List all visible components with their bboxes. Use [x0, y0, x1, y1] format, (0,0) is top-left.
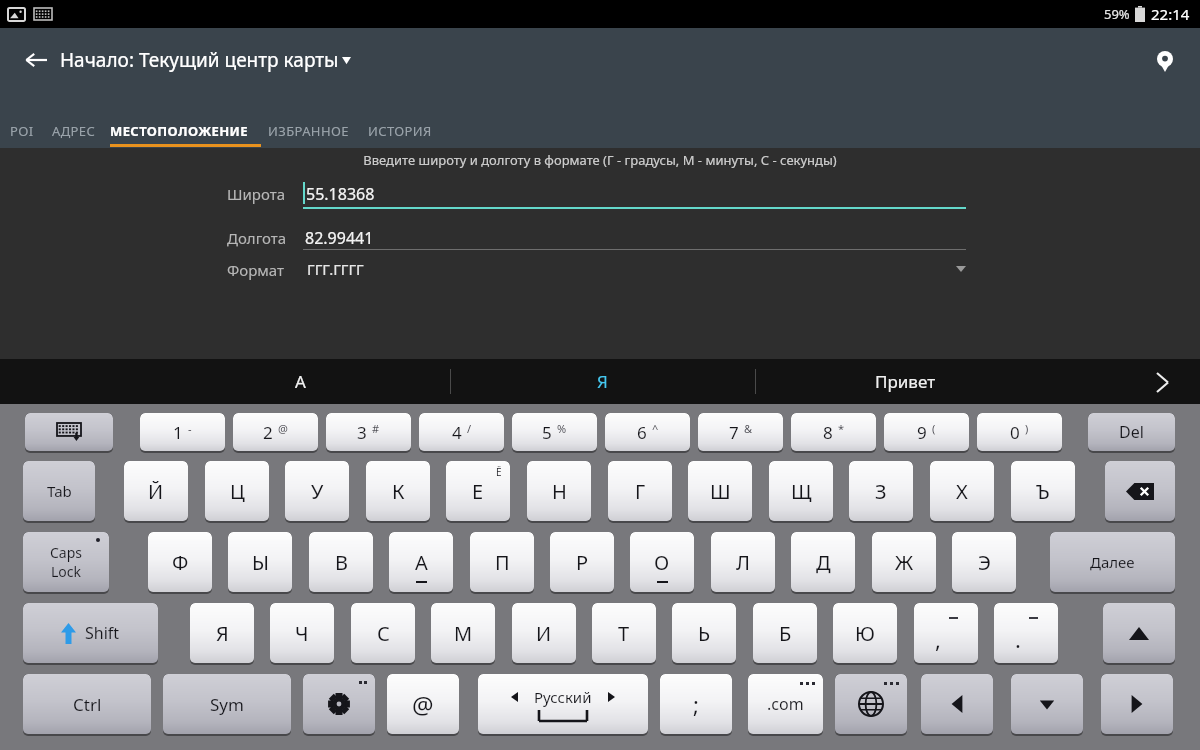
button[interactable]: 9	[884, 413, 969, 451]
button[interactable]: Left	[921, 674, 993, 734]
button[interactable]: С	[351, 603, 415, 663]
staticText: Caps	[50, 543, 83, 562]
button[interactable]: Ж	[872, 532, 936, 592]
button[interactable]: .com	[748, 674, 823, 734]
staticText: К	[392, 478, 405, 505]
staticText: Б	[779, 620, 792, 647]
button[interactable]: Up	[1103, 603, 1175, 663]
staticText: Н	[552, 478, 567, 505]
button[interactable]: ИЗБРАННОЕ	[268, 113, 349, 148]
button[interactable]: Д	[791, 532, 855, 592]
staticText: Привет	[875, 370, 936, 393]
button[interactable]: О	[630, 532, 694, 592]
staticText: ИСТОРИЯ	[368, 122, 432, 140]
button[interactable]: Ф	[148, 532, 212, 592]
staticText: @	[278, 421, 288, 436]
staticText: ^	[652, 421, 659, 436]
button[interactable]: Shift	[23, 603, 158, 663]
staticText: Ъ	[1036, 478, 1050, 505]
staticText: Sym	[210, 693, 244, 716]
button[interactable]: .	[994, 603, 1058, 663]
button[interactable]: Н	[527, 461, 591, 521]
button[interactable]: Й	[124, 461, 188, 521]
button[interactable]: Э	[952, 532, 1016, 592]
button[interactable]: 2	[233, 413, 318, 451]
button[interactable]: П	[470, 532, 534, 592]
button[interactable]: Language	[835, 674, 907, 734]
staticText: Г	[635, 478, 646, 505]
button[interactable]: 7	[698, 413, 783, 451]
button[interactable]: Ч	[270, 603, 334, 663]
button[interactable]: Backspace	[1105, 461, 1175, 521]
button[interactable]: Right	[1101, 674, 1173, 734]
button[interactable]: Space, Русский	[478, 674, 648, 734]
button[interactable]: 1	[140, 413, 225, 451]
button[interactable]: 6	[605, 413, 690, 451]
button[interactable]: Щ	[769, 461, 833, 521]
button[interactable]: А	[150, 359, 450, 404]
staticText: В	[335, 549, 348, 576]
button[interactable]: К	[366, 461, 430, 521]
staticText: Ц	[230, 478, 245, 505]
button[interactable]: 55.18368	[303, 180, 966, 208]
button[interactable]: Sym	[163, 674, 291, 734]
staticText: &	[744, 421, 753, 436]
button[interactable]: Ш	[688, 461, 752, 521]
button[interactable]: З	[849, 461, 913, 521]
button[interactable]: Ctrl	[23, 674, 151, 734]
button[interactable]: POI	[10, 113, 34, 148]
button[interactable]: 82.99441	[305, 224, 966, 250]
button[interactable]: 8	[791, 413, 876, 451]
button[interactable]: 4	[419, 413, 504, 451]
button[interactable]: Т	[592, 603, 656, 663]
button[interactable]: Г	[608, 461, 672, 521]
button[interactable]: At sign	[387, 674, 459, 734]
button[interactable]: Я	[190, 603, 254, 663]
button[interactable]: Down	[1011, 674, 1083, 734]
button[interactable]: Р	[550, 532, 614, 592]
staticText: О	[654, 549, 670, 576]
button[interactable]: Привет	[755, 359, 1055, 404]
button[interactable]: Del	[1088, 413, 1175, 451]
button[interactable]: Е	[446, 461, 510, 521]
button[interactable]: И	[512, 603, 576, 663]
button[interactable]: Ю	[833, 603, 897, 663]
staticText: Е	[472, 478, 484, 505]
button[interactable]: Ц	[205, 461, 269, 521]
button[interactable]: МЕСТОПОЛОЖЕНИЕ	[110, 113, 248, 148]
button[interactable]: Semicolon	[660, 674, 732, 734]
button[interactable]: Начало: Текущий центр карты	[60, 42, 351, 78]
button[interactable]: Ь	[672, 603, 736, 663]
button[interactable]: 3	[326, 413, 411, 451]
button[interactable]: Ы	[228, 532, 292, 592]
button[interactable]: Л	[711, 532, 775, 592]
button[interactable]: М	[431, 603, 495, 663]
button[interactable]: Я	[450, 359, 755, 404]
staticText: Ф	[172, 549, 189, 576]
button[interactable]: Ъ	[1011, 461, 1075, 521]
staticText: Х	[956, 478, 968, 505]
button[interactable]: У	[285, 461, 349, 521]
button[interactable]: 0	[977, 413, 1062, 451]
staticText: 4	[452, 421, 462, 444]
button[interactable]: АДРЕС	[52, 113, 96, 148]
button[interactable]: Back	[14, 38, 58, 82]
button[interactable]: Hide keyboard	[25, 413, 113, 451]
button[interactable]: Далее	[1050, 532, 1175, 592]
button[interactable]: Settings	[303, 674, 375, 734]
button[interactable]: Caps Lock	[23, 532, 109, 592]
button[interactable]: Б	[753, 603, 817, 663]
button[interactable]: Tab	[23, 461, 95, 521]
button[interactable]: 5	[512, 413, 597, 451]
button[interactable]: Х	[930, 461, 994, 521]
button[interactable]: ИСТОРИЯ	[368, 113, 432, 148]
staticText: @	[412, 688, 434, 721]
button[interactable]: More suggestions	[1144, 364, 1180, 400]
button[interactable]: Map location	[1144, 40, 1186, 82]
button[interactable]: В	[309, 532, 373, 592]
staticText: П	[495, 549, 510, 576]
button[interactable]: А	[389, 532, 453, 592]
staticText: #	[372, 421, 380, 436]
button[interactable]: Формат ГГГ.ГГГГ	[303, 255, 966, 283]
button[interactable]: ,	[914, 603, 978, 663]
